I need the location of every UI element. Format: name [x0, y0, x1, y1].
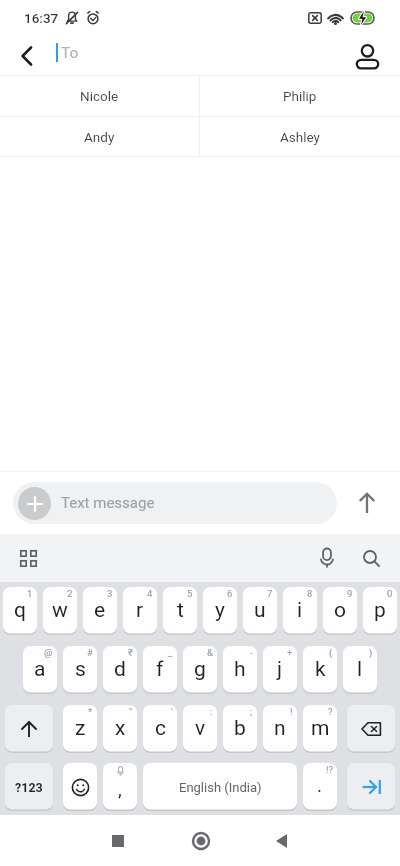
button[interactable]: Ashley — [200, 117, 400, 156]
button[interactable]: English (India) — [143, 763, 297, 811]
button[interactable] — [354, 43, 380, 69]
staticText: w — [52, 598, 68, 623]
button[interactable]: Andy — [0, 117, 199, 156]
staticText: ? — [328, 706, 333, 717]
button[interactable] — [14, 44, 38, 68]
button[interactable]: ; — [223, 705, 257, 753]
staticText: ?123 — [15, 780, 43, 795]
button[interactable]: ? — [303, 705, 337, 753]
staticText: u — [254, 598, 266, 623]
button[interactable]: 4 — [123, 587, 157, 635]
staticText: Andy — [84, 129, 115, 145]
button[interactable]: * — [63, 705, 97, 753]
staticText: ; — [250, 706, 253, 717]
staticText: q — [14, 598, 26, 623]
button[interactable] — [5, 705, 53, 753]
button[interactable]: 8 — [283, 587, 317, 635]
staticText: v — [195, 716, 206, 741]
button[interactable]: 3 — [83, 587, 117, 635]
button[interactable]: @ — [23, 646, 57, 694]
button[interactable]: ! — [263, 705, 297, 753]
button[interactable]: ( — [303, 646, 337, 694]
staticText: c — [155, 716, 166, 741]
staticText: : — [210, 706, 213, 717]
staticText: Philip — [283, 88, 317, 104]
button[interactable]: + — [263, 646, 297, 694]
button[interactable]: Text message — [13, 482, 337, 524]
staticText: ₹ — [128, 647, 133, 658]
staticText: - — [250, 647, 253, 658]
button[interactable]: ?123 — [5, 763, 53, 811]
staticText: !? — [326, 764, 333, 775]
button[interactable]: & — [183, 646, 217, 694]
staticText: ( — [329, 647, 333, 658]
button[interactable] — [103, 826, 133, 856]
button[interactable]: , — [103, 763, 137, 811]
staticText: e — [94, 598, 106, 623]
staticText: 1 — [27, 588, 33, 599]
staticText: To — [61, 44, 79, 62]
button[interactable]: _ — [143, 646, 177, 694]
staticText: Nicole — [80, 88, 119, 104]
staticText: s — [75, 657, 86, 682]
button[interactable] — [316, 547, 338, 569]
staticText: r — [136, 598, 144, 623]
staticText: Ashley — [280, 129, 320, 145]
staticText: * — [88, 706, 93, 717]
button[interactable]: - — [223, 646, 257, 694]
button[interactable]: ' — [143, 705, 177, 753]
button[interactable] — [347, 763, 395, 811]
button[interactable]: ₹ — [103, 646, 137, 694]
button[interactable]: !? — [303, 763, 337, 811]
button[interactable] — [63, 763, 97, 811]
staticText: ! — [290, 706, 293, 717]
button[interactable]: # — [63, 646, 97, 694]
staticText: h — [234, 657, 246, 682]
staticText: y — [215, 598, 225, 623]
button[interactable]: 6 — [203, 587, 237, 635]
staticText: 9 — [347, 588, 353, 599]
button[interactable] — [354, 490, 380, 516]
staticText: 8 — [307, 588, 313, 599]
staticText: j — [277, 657, 283, 682]
staticText: , — [118, 778, 122, 800]
button[interactable] — [360, 547, 382, 569]
staticText: z — [75, 716, 86, 741]
staticText: 3 — [107, 588, 113, 599]
button[interactable]: 0 — [363, 587, 397, 635]
staticText: t — [177, 598, 184, 623]
staticText: Text message — [61, 494, 155, 512]
button[interactable] — [186, 826, 216, 856]
staticText: k — [315, 657, 326, 682]
button[interactable] — [266, 826, 296, 856]
button[interactable]: 2 — [43, 587, 77, 635]
staticText: & — [207, 647, 213, 658]
staticText: ) — [369, 647, 373, 658]
staticText: m — [311, 716, 330, 741]
button[interactable]: 1 — [3, 587, 37, 635]
staticText: . — [317, 774, 323, 796]
staticText: English (India) — [179, 780, 262, 795]
button[interactable]: Philip — [200, 76, 400, 116]
button[interactable]: 7 — [243, 587, 277, 635]
button[interactable] — [18, 487, 51, 520]
staticText: 7 — [267, 588, 273, 599]
staticText: n — [274, 716, 286, 741]
staticText: o — [334, 598, 346, 623]
staticText: f — [156, 657, 164, 682]
staticText: " — [129, 706, 133, 717]
button[interactable] — [347, 705, 395, 753]
button[interactable]: 5 — [163, 587, 197, 635]
button[interactable]: : — [183, 705, 217, 753]
staticText: @ — [44, 647, 53, 658]
staticText: x — [115, 716, 126, 741]
staticText: 4 — [147, 588, 153, 599]
button[interactable]: Nicole — [0, 76, 199, 116]
button[interactable] — [18, 548, 38, 568]
button[interactable]: " — [103, 705, 137, 753]
button[interactable]: ) — [343, 646, 377, 694]
staticText: _ — [168, 647, 173, 658]
button[interactable]: 9 — [323, 587, 357, 635]
staticText: + — [287, 647, 293, 658]
staticText: p — [374, 598, 386, 623]
